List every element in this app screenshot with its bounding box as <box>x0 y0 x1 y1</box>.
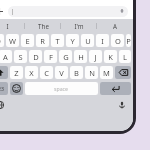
button[interactable]: X <box>25 66 38 79</box>
staticText: A <box>3 52 8 62</box>
button[interactable]: Switch keyboard <box>0 99 6 111</box>
staticText: J <box>94 52 97 62</box>
button[interactable]: Y <box>66 34 79 47</box>
staticText: X <box>29 68 34 78</box>
button[interactable]: O <box>111 34 124 47</box>
button[interactable]: space <box>25 82 98 95</box>
button[interactable]: I <box>0 19 25 32</box>
staticText: I <box>6 22 9 30</box>
button[interactable]: S <box>14 50 27 63</box>
staticText: U <box>85 36 91 46</box>
staticText: C <box>44 68 49 78</box>
button[interactable]: A <box>0 50 12 63</box>
button[interactable]: Return <box>100 82 131 95</box>
staticText: Q <box>0 36 1 46</box>
button[interactable]: V <box>55 66 68 79</box>
staticText: G <box>63 52 69 62</box>
button[interactable]: W <box>6 34 19 47</box>
staticText: I <box>101 36 104 46</box>
button[interactable]: F <box>44 50 57 63</box>
staticText: E <box>25 36 30 46</box>
button[interactable]: Z <box>10 66 23 79</box>
staticText: S <box>18 52 23 62</box>
button[interactable]: U <box>81 34 94 47</box>
button[interactable] <box>8 6 128 17</box>
staticText: P <box>126 36 131 46</box>
staticText: T <box>55 36 60 46</box>
button[interactable]: T <box>51 34 64 47</box>
button[interactable]: N <box>85 66 98 79</box>
button[interactable]: P <box>126 34 131 47</box>
button[interactable]: D <box>29 50 42 63</box>
button[interactable]: I'm <box>61 19 97 32</box>
button[interactable]: Q <box>0 34 4 47</box>
button[interactable]: Dictate <box>116 99 128 111</box>
button[interactable]: C <box>40 66 53 79</box>
button[interactable]: L <box>119 50 131 63</box>
button[interactable]: Emoji <box>10 82 23 95</box>
button[interactable]: G <box>59 50 72 63</box>
staticText: K <box>108 52 113 62</box>
button[interactable]: H <box>74 50 87 63</box>
button[interactable]: A <box>97 19 133 32</box>
staticText: Y <box>70 36 75 46</box>
button[interactable]: Add attachment <box>0 6 5 17</box>
button[interactable]: J <box>89 50 102 63</box>
staticText: B <box>74 68 79 78</box>
button[interactable]: Shift <box>0 66 8 79</box>
button[interactable]: 123 <box>0 82 8 95</box>
staticText: W <box>9 36 16 46</box>
staticText: A <box>113 22 117 30</box>
button[interactable]: M <box>100 66 113 79</box>
staticText: R <box>40 36 45 46</box>
staticText: I'm <box>74 22 84 30</box>
button[interactable]: Backspace <box>115 66 131 79</box>
staticText: Z <box>14 68 19 78</box>
staticText: H <box>78 52 84 62</box>
staticText: F <box>49 52 53 62</box>
staticText: M <box>103 68 110 78</box>
button[interactable]: E <box>21 34 34 47</box>
staticText: N <box>89 68 95 78</box>
staticText: 123 <box>0 85 4 92</box>
staticText: L <box>123 52 127 62</box>
button[interactable]: I <box>96 34 109 47</box>
button[interactable]: The <box>25 19 61 32</box>
staticText: space <box>54 85 69 92</box>
staticText: D <box>33 52 39 62</box>
staticText: The <box>38 22 49 30</box>
staticText: V <box>59 68 64 78</box>
button[interactable]: K <box>104 50 117 63</box>
button[interactable]: B <box>70 66 83 79</box>
staticText: O <box>115 36 121 46</box>
button[interactable]: R <box>36 34 49 47</box>
